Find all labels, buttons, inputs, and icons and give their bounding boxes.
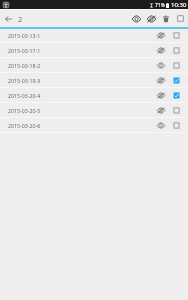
button[interactable]: Select [170, 29, 182, 41]
staticText: 71% [155, 2, 165, 9]
staticText: 2015-03-20-4 [8, 92, 41, 99]
staticText: 2015-03-13-1 [8, 32, 41, 39]
button[interactable]: Select [170, 119, 182, 131]
button[interactable]: Select [170, 104, 182, 116]
button[interactable]: Hide [144, 10, 159, 27]
button[interactable]: 2015-03-17-1 [0, 43, 188, 57]
button[interactable]: Select [170, 59, 182, 71]
staticText: 2015-03-20-6 [8, 122, 41, 129]
button[interactable]: Hidden [154, 89, 167, 102]
staticText: 2015-03-18-2 [8, 62, 41, 69]
button[interactable]: Visible [154, 59, 167, 72]
button[interactable]: Select [170, 74, 182, 86]
staticText: 10:30 [171, 1, 187, 9]
button[interactable]: Select [170, 44, 182, 56]
staticText: 2 [18, 14, 23, 24]
staticText: 2015-03-17-1 [8, 47, 41, 54]
button[interactable]: Hidden [154, 74, 167, 87]
button[interactable]: 2015-03-19-3 [0, 73, 188, 87]
button[interactable]: Hidden [154, 44, 167, 57]
button[interactable]: Select [170, 89, 182, 101]
button[interactable]: Delete [159, 10, 173, 27]
button[interactable]: 2015-03-20-4 [0, 88, 188, 102]
button[interactable]: 2015-03-13-1 [0, 28, 188, 42]
button[interactable]: More options [173, 10, 188, 27]
button[interactable]: Show [129, 10, 144, 27]
button[interactable]: Back [0, 11, 16, 27]
button[interactable]: Hidden [154, 29, 167, 42]
button[interactable]: Hidden [154, 104, 167, 117]
button[interactable]: 2015-03-20-5 [0, 103, 188, 117]
staticText: 2015-03-19-3 [8, 77, 41, 84]
button[interactable]: Visible [154, 119, 167, 132]
button[interactable]: 2015-03-20-6 [0, 118, 188, 132]
staticText: 2015-03-20-5 [8, 107, 41, 114]
button[interactable]: 2015-03-18-2 [0, 58, 188, 72]
